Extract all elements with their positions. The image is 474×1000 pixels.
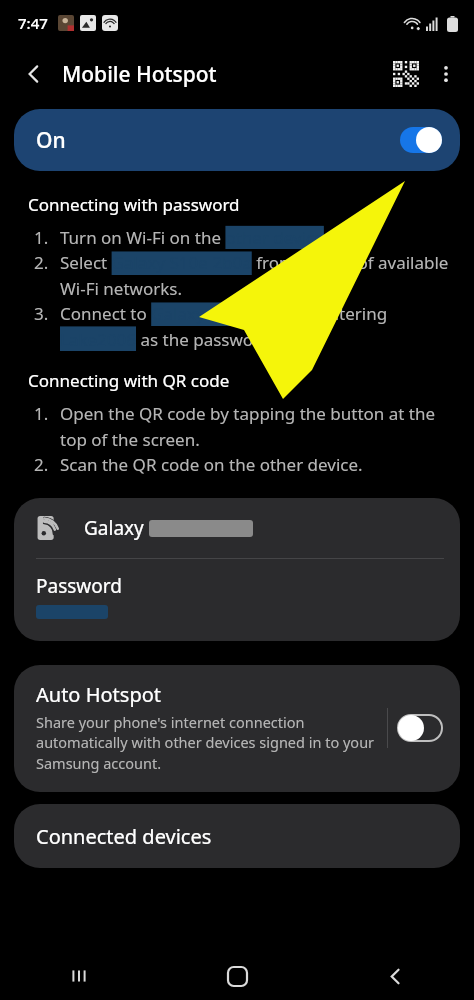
- staticText: Turn on Wi-Fi on the other device: [60, 226, 324, 249]
- staticText: 2.: [34, 251, 60, 274]
- button[interactable]: Home: [158, 952, 316, 1000]
- button[interactable]: Auto Hotspot toggle: [398, 715, 442, 741]
- staticText: Select Galaxy S10e 2b0a from the list of…: [60, 251, 454, 300]
- staticText: Share your phone's internet connection a…: [36, 712, 387, 774]
- staticText: Password: [36, 573, 122, 599]
- staticText: Mobile Hotspot: [62, 60, 217, 89]
- staticText: Galaxy: [84, 515, 149, 541]
- staticText: 7:47: [18, 13, 48, 33]
- button[interactable]: Back: [14, 54, 54, 94]
- staticText: Connecting with QR code: [28, 369, 230, 392]
- staticText: Connect to Galaxy S10e 2b0a by entering …: [60, 302, 454, 351]
- button[interactable]: Connected devices: [14, 804, 460, 868]
- staticText: Auto Hotspot: [36, 681, 161, 708]
- staticText: 3.: [34, 302, 60, 325]
- button[interactable]: QR code: [386, 54, 426, 94]
- staticText: Scan the QR code on the other device.: [60, 453, 363, 476]
- staticText: On: [36, 126, 66, 155]
- button[interactable]: Recents: [0, 952, 158, 1000]
- button[interactable]: Password: [14, 559, 460, 641]
- staticText: 1.: [34, 226, 60, 249]
- button[interactable]: On: [14, 109, 460, 171]
- staticText: 2.: [34, 453, 60, 476]
- staticText: 1.: [34, 402, 60, 425]
- button[interactable]: Back: [316, 952, 474, 1000]
- staticText: Connected devices: [36, 823, 212, 850]
- button[interactable]: More options: [426, 54, 466, 94]
- button[interactable]: Auto Hotspot: [14, 665, 460, 792]
- button[interactable]: Galaxy: [14, 498, 460, 558]
- staticText: Open the QR code by tapping the button a…: [60, 402, 454, 451]
- staticText: Connecting with password: [28, 193, 240, 216]
